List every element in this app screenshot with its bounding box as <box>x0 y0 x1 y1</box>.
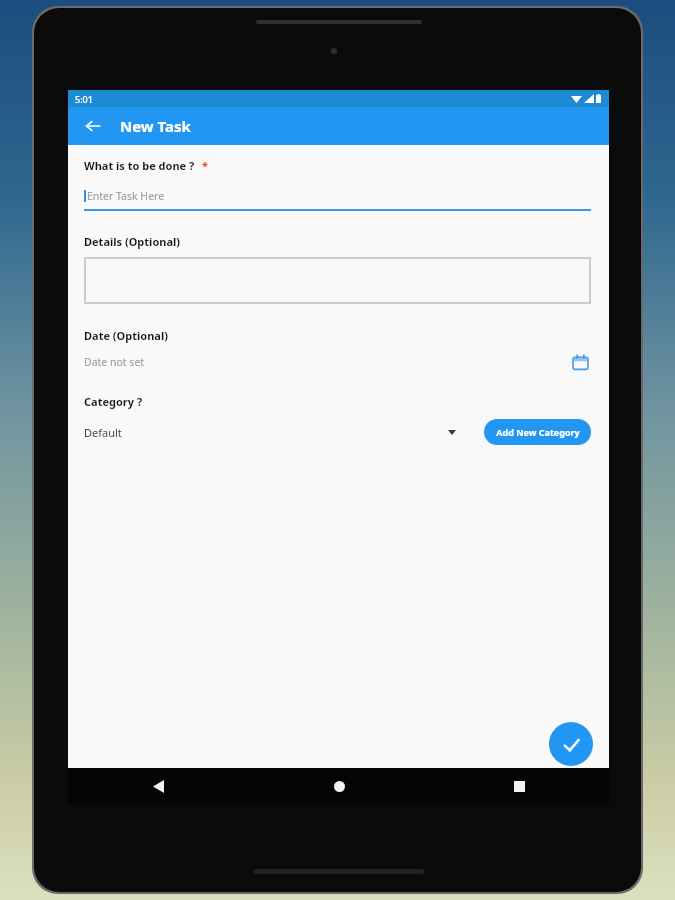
button[interactable]: Save task <box>549 722 593 766</box>
staticText: Add New Category <box>496 426 580 438</box>
button[interactable]: Enter Task Here <box>84 182 591 209</box>
staticText: Date (Optional) <box>84 328 168 343</box>
staticText: What is to be done ? <box>84 158 195 173</box>
button[interactable] <box>84 257 591 304</box>
button[interactable]: Pick date <box>569 351 591 373</box>
button[interactable]: Add New Category <box>484 419 591 445</box>
button[interactable]: Recent apps <box>429 768 609 805</box>
button[interactable]: Home <box>249 768 429 805</box>
staticText: 5:01 <box>75 93 93 105</box>
button[interactable]: Back <box>78 111 108 141</box>
staticText: Date not set <box>84 355 145 369</box>
button[interactable]: Date not set <box>84 349 569 375</box>
staticText: * <box>202 158 208 173</box>
button[interactable]: Default <box>84 419 462 445</box>
button[interactable]: Back <box>68 768 249 805</box>
staticText: New Task <box>120 116 191 136</box>
staticText: Enter Task Here <box>87 189 165 203</box>
staticText: Details (Optional) <box>84 234 180 249</box>
staticText: Default <box>84 425 122 440</box>
staticText: Category ? <box>84 394 143 409</box>
